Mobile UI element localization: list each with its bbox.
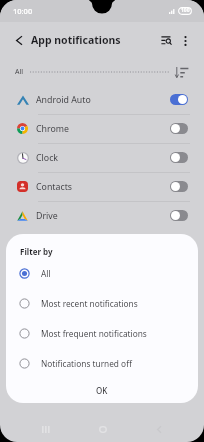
staticText: 10:00 (13, 6, 33, 16)
staticText: Contacts (36, 181, 73, 193)
staticText: Filter by (20, 246, 53, 257)
staticText: Most recent notifications (41, 298, 138, 309)
button[interactable]: Turn on (170, 152, 188, 163)
staticText: Most frequent notifications (41, 328, 147, 339)
button[interactable]: All (11, 64, 28, 80)
button[interactable]: Android Auto (0, 85, 204, 114)
staticText: All (41, 268, 51, 279)
staticText: 100 (181, 7, 190, 14)
staticText: App notifications (31, 33, 121, 47)
staticText: OK (96, 385, 108, 396)
button[interactable]: Contacts (0, 172, 204, 201)
staticText: Android Auto (36, 94, 91, 106)
button[interactable]: Turn off (170, 94, 188, 105)
button[interactable]: Notifications turned off (6, 348, 198, 378)
staticText: Drive (36, 210, 58, 222)
staticText: Chrome (36, 123, 69, 135)
button[interactable]: OK (6, 378, 198, 403)
button[interactable]: Most frequent notifications (6, 318, 198, 348)
button[interactable]: Drive (0, 201, 204, 230)
staticText: Notifications turned off (41, 358, 132, 369)
button[interactable]: More options (177, 32, 194, 49)
staticText: Clock (36, 152, 59, 164)
button[interactable]: Clock (0, 143, 204, 172)
button[interactable]: Most recent notifications (6, 288, 198, 318)
button[interactable]: Chrome (0, 114, 204, 143)
button[interactable]: Turn on (170, 123, 188, 134)
staticText: All (15, 67, 24, 77)
button[interactable]: Turn on (170, 210, 188, 221)
button[interactable]: Back (9, 31, 28, 50)
button[interactable]: Search (157, 31, 175, 49)
button[interactable]: Turn on (170, 181, 188, 192)
button[interactable]: Sort (173, 63, 191, 81)
button[interactable]: All (6, 258, 198, 288)
